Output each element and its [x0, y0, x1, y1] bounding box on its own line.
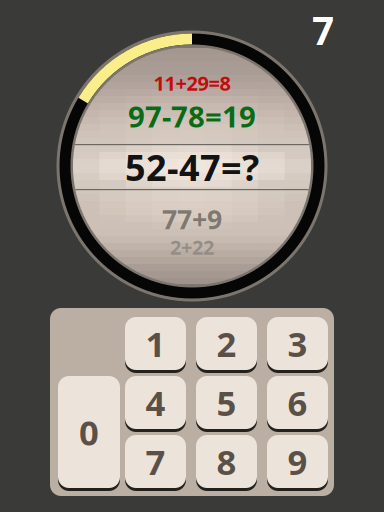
staticText: 77+9 — [162, 201, 222, 237]
button[interactable]: 1 — [125, 314, 186, 373]
staticText: 6 — [287, 379, 307, 425]
staticText: 0 — [79, 409, 99, 455]
staticText: 9 — [287, 438, 307, 484]
staticText: 4 — [145, 379, 165, 425]
button[interactable]: 4 — [125, 373, 186, 432]
staticText: 8 — [216, 438, 236, 484]
button[interactable]: 0 — [58, 373, 120, 491]
button[interactable]: 3 — [267, 314, 328, 373]
staticText: 2+22 — [170, 234, 214, 260]
staticText: 1 — [145, 320, 165, 366]
staticText: 52-47=? — [125, 143, 259, 191]
button[interactable]: 7 — [125, 432, 186, 491]
button[interactable]: 8 — [196, 432, 257, 491]
staticText: 5 — [216, 379, 236, 425]
button[interactable]: 6 — [267, 373, 328, 432]
staticText: 97-78=19 — [128, 96, 256, 135]
staticText: 11+29=8 — [153, 70, 230, 96]
button[interactable]: 2 — [196, 314, 257, 373]
staticText: 7 — [312, 4, 334, 56]
staticText: 3 — [287, 320, 307, 366]
button[interactable]: 5 — [196, 373, 257, 432]
button[interactable]: 9 — [267, 432, 328, 491]
staticText: 2 — [216, 320, 236, 366]
staticText: 7 — [145, 438, 165, 484]
